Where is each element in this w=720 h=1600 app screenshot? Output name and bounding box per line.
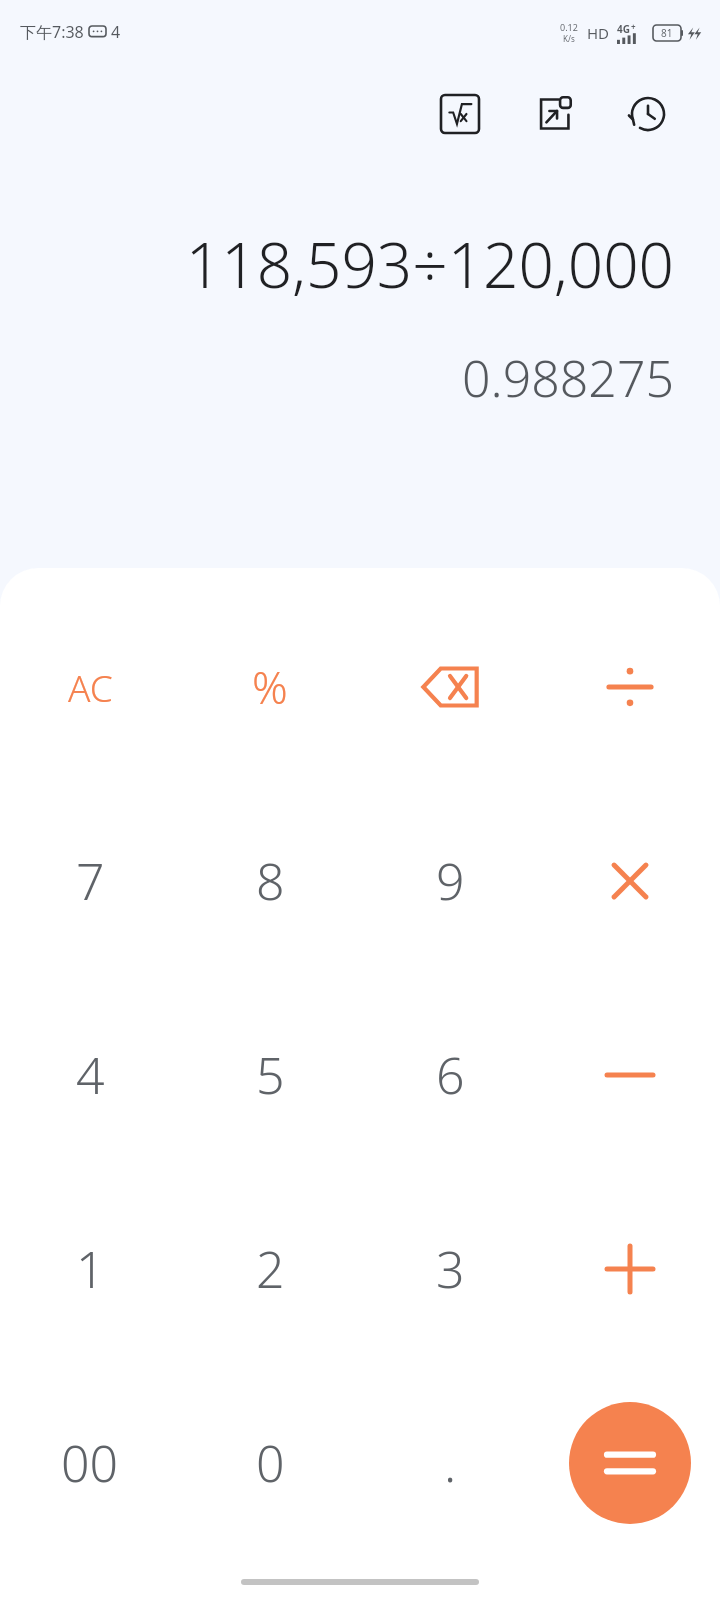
button[interactable] — [540, 978, 720, 1172]
staticText: 5 — [256, 1041, 285, 1109]
staticText: 118,593÷120,000 — [185, 222, 674, 306]
staticText: 2 — [256, 1235, 285, 1303]
button[interactable]: 1 — [0, 1172, 180, 1366]
button[interactable]: AC — [0, 590, 180, 784]
button[interactable]: Backspace — [360, 590, 540, 784]
button[interactable]: History — [616, 82, 680, 146]
staticText: 4G — [617, 22, 630, 36]
staticText: 3 — [436, 1235, 465, 1303]
staticText: K/s — [563, 33, 575, 44]
button[interactable]: Equals — [540, 1366, 720, 1560]
staticText: HD — [587, 23, 610, 43]
button[interactable]: 3 — [360, 1172, 540, 1366]
button[interactable]: Floating window — [522, 82, 586, 146]
button[interactable]: 6 — [360, 978, 540, 1172]
button[interactable]: 2 — [180, 1172, 360, 1366]
staticText: 1 — [76, 1235, 105, 1303]
staticText: 6 — [436, 1041, 465, 1109]
staticText: % — [252, 657, 288, 717]
button[interactable]: Scientific calculator — [428, 82, 492, 146]
staticText: 0.988275 — [461, 344, 674, 412]
button[interactable] — [540, 784, 720, 978]
staticText: 9 — [436, 847, 465, 915]
button[interactable]: 0 — [180, 1366, 360, 1560]
staticText: 81 — [661, 26, 673, 40]
button[interactable]: . — [360, 1366, 540, 1560]
staticText: 4 — [111, 21, 121, 43]
staticText: 00 — [61, 1429, 119, 1497]
button[interactable]: 00 — [0, 1366, 180, 1560]
button[interactable]: 5 — [180, 978, 360, 1172]
staticText: 8 — [256, 847, 285, 915]
button[interactable] — [540, 590, 720, 784]
button[interactable]: 7 — [0, 784, 180, 978]
button[interactable]: 8 — [180, 784, 360, 978]
staticText: + — [631, 21, 636, 32]
staticText: 0.12 — [560, 21, 578, 33]
button[interactable] — [540, 1172, 720, 1366]
staticText: 0 — [256, 1429, 285, 1497]
button[interactable]: 4 — [0, 978, 180, 1172]
staticText: AC — [68, 662, 113, 712]
staticText: 4 — [76, 1041, 105, 1109]
staticText: . — [444, 1429, 457, 1497]
staticText: 7 — [76, 847, 105, 915]
staticText: 下午7:38 — [20, 21, 84, 43]
button[interactable]: 9 — [360, 784, 540, 978]
button[interactable]: % — [180, 590, 360, 784]
